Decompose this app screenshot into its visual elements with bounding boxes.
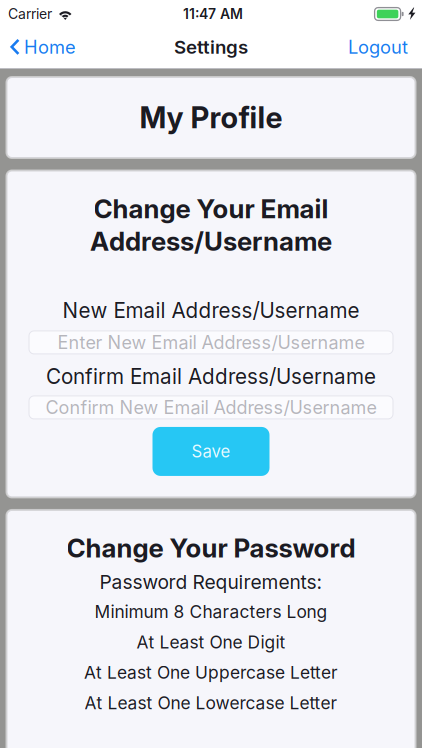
staticText: My Profile (139, 100, 282, 135)
staticText: Save (191, 441, 230, 461)
staticText: Confirm New Email Address/Username (45, 396, 376, 418)
staticText: Logout (348, 36, 408, 58)
staticText: At Least One Digit (136, 632, 285, 653)
staticText: Enter New Email Address/Username (57, 331, 364, 353)
staticText: Settings (174, 36, 248, 58)
button[interactable]: My Profile (5, 76, 416, 159)
button[interactable]: Save (152, 427, 269, 476)
staticText: Change Your Email (93, 193, 328, 224)
staticText: Minimum 8 Characters Long (94, 601, 327, 622)
staticText: Address/Username (90, 225, 332, 257)
staticText: Password Requirements: (99, 570, 322, 594)
staticText: New Email Address/Username (62, 298, 359, 323)
staticText: At Least One Uppercase Letter (84, 662, 338, 683)
button[interactable]: Logout (334, 26, 422, 68)
staticText: 11:47 AM (183, 5, 243, 22)
staticText: Confirm Email Address/Username (46, 364, 376, 389)
staticText: Carrier (8, 5, 52, 22)
staticText: Home (24, 36, 76, 58)
button[interactable]: Home (0, 26, 86, 68)
staticText: At Least One Lowercase Letter (84, 692, 337, 713)
staticText: Change Your Password (66, 532, 355, 564)
